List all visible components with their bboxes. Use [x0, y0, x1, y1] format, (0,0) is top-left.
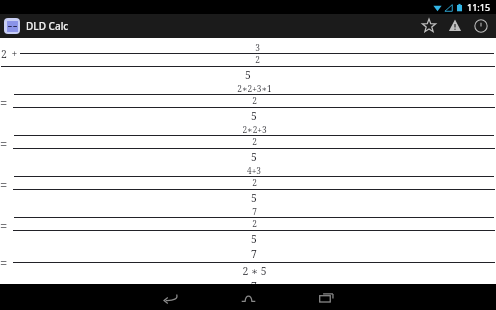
button[interactable]: Home	[220, 284, 276, 310]
staticText: 5	[251, 191, 257, 205]
button[interactable]: Back	[142, 284, 198, 310]
staticText: =	[0, 176, 8, 194]
staticText: 2	[255, 54, 260, 65]
button[interactable]: DLD Calc	[4, 18, 69, 34]
button[interactable]: Recent apps	[298, 284, 354, 310]
staticText: 7	[251, 279, 257, 284]
staticText: 3	[255, 42, 260, 53]
staticText: DLD Calc	[26, 19, 69, 33]
staticText: 11:15	[467, 1, 491, 13]
staticText: 2	[252, 218, 257, 229]
staticText: 2	[252, 136, 257, 147]
staticText: 2	[1, 47, 7, 61]
staticText: =	[0, 135, 8, 153]
button[interactable]: Favorite	[416, 14, 442, 38]
staticText: 5	[251, 232, 257, 246]
staticText: 2	[252, 177, 257, 188]
staticText: 7	[251, 247, 257, 261]
button[interactable]: Info	[468, 14, 494, 38]
staticText: 2 ∗ 5	[242, 264, 267, 278]
staticText: 5	[251, 150, 257, 164]
staticText: 4+3	[247, 165, 261, 176]
staticText: 5	[251, 109, 257, 123]
staticText: =	[0, 217, 8, 235]
staticText: 2∗2+3	[242, 124, 267, 135]
staticText: +	[7, 47, 19, 61]
staticText: =	[0, 254, 8, 272]
staticText: =	[0, 94, 8, 112]
staticText: 2∗2+3∗1	[237, 83, 272, 94]
button[interactable]: Warnings	[442, 14, 468, 38]
staticText: 5	[245, 68, 251, 82]
staticText: 2	[252, 95, 257, 106]
staticText: 7	[252, 206, 257, 217]
